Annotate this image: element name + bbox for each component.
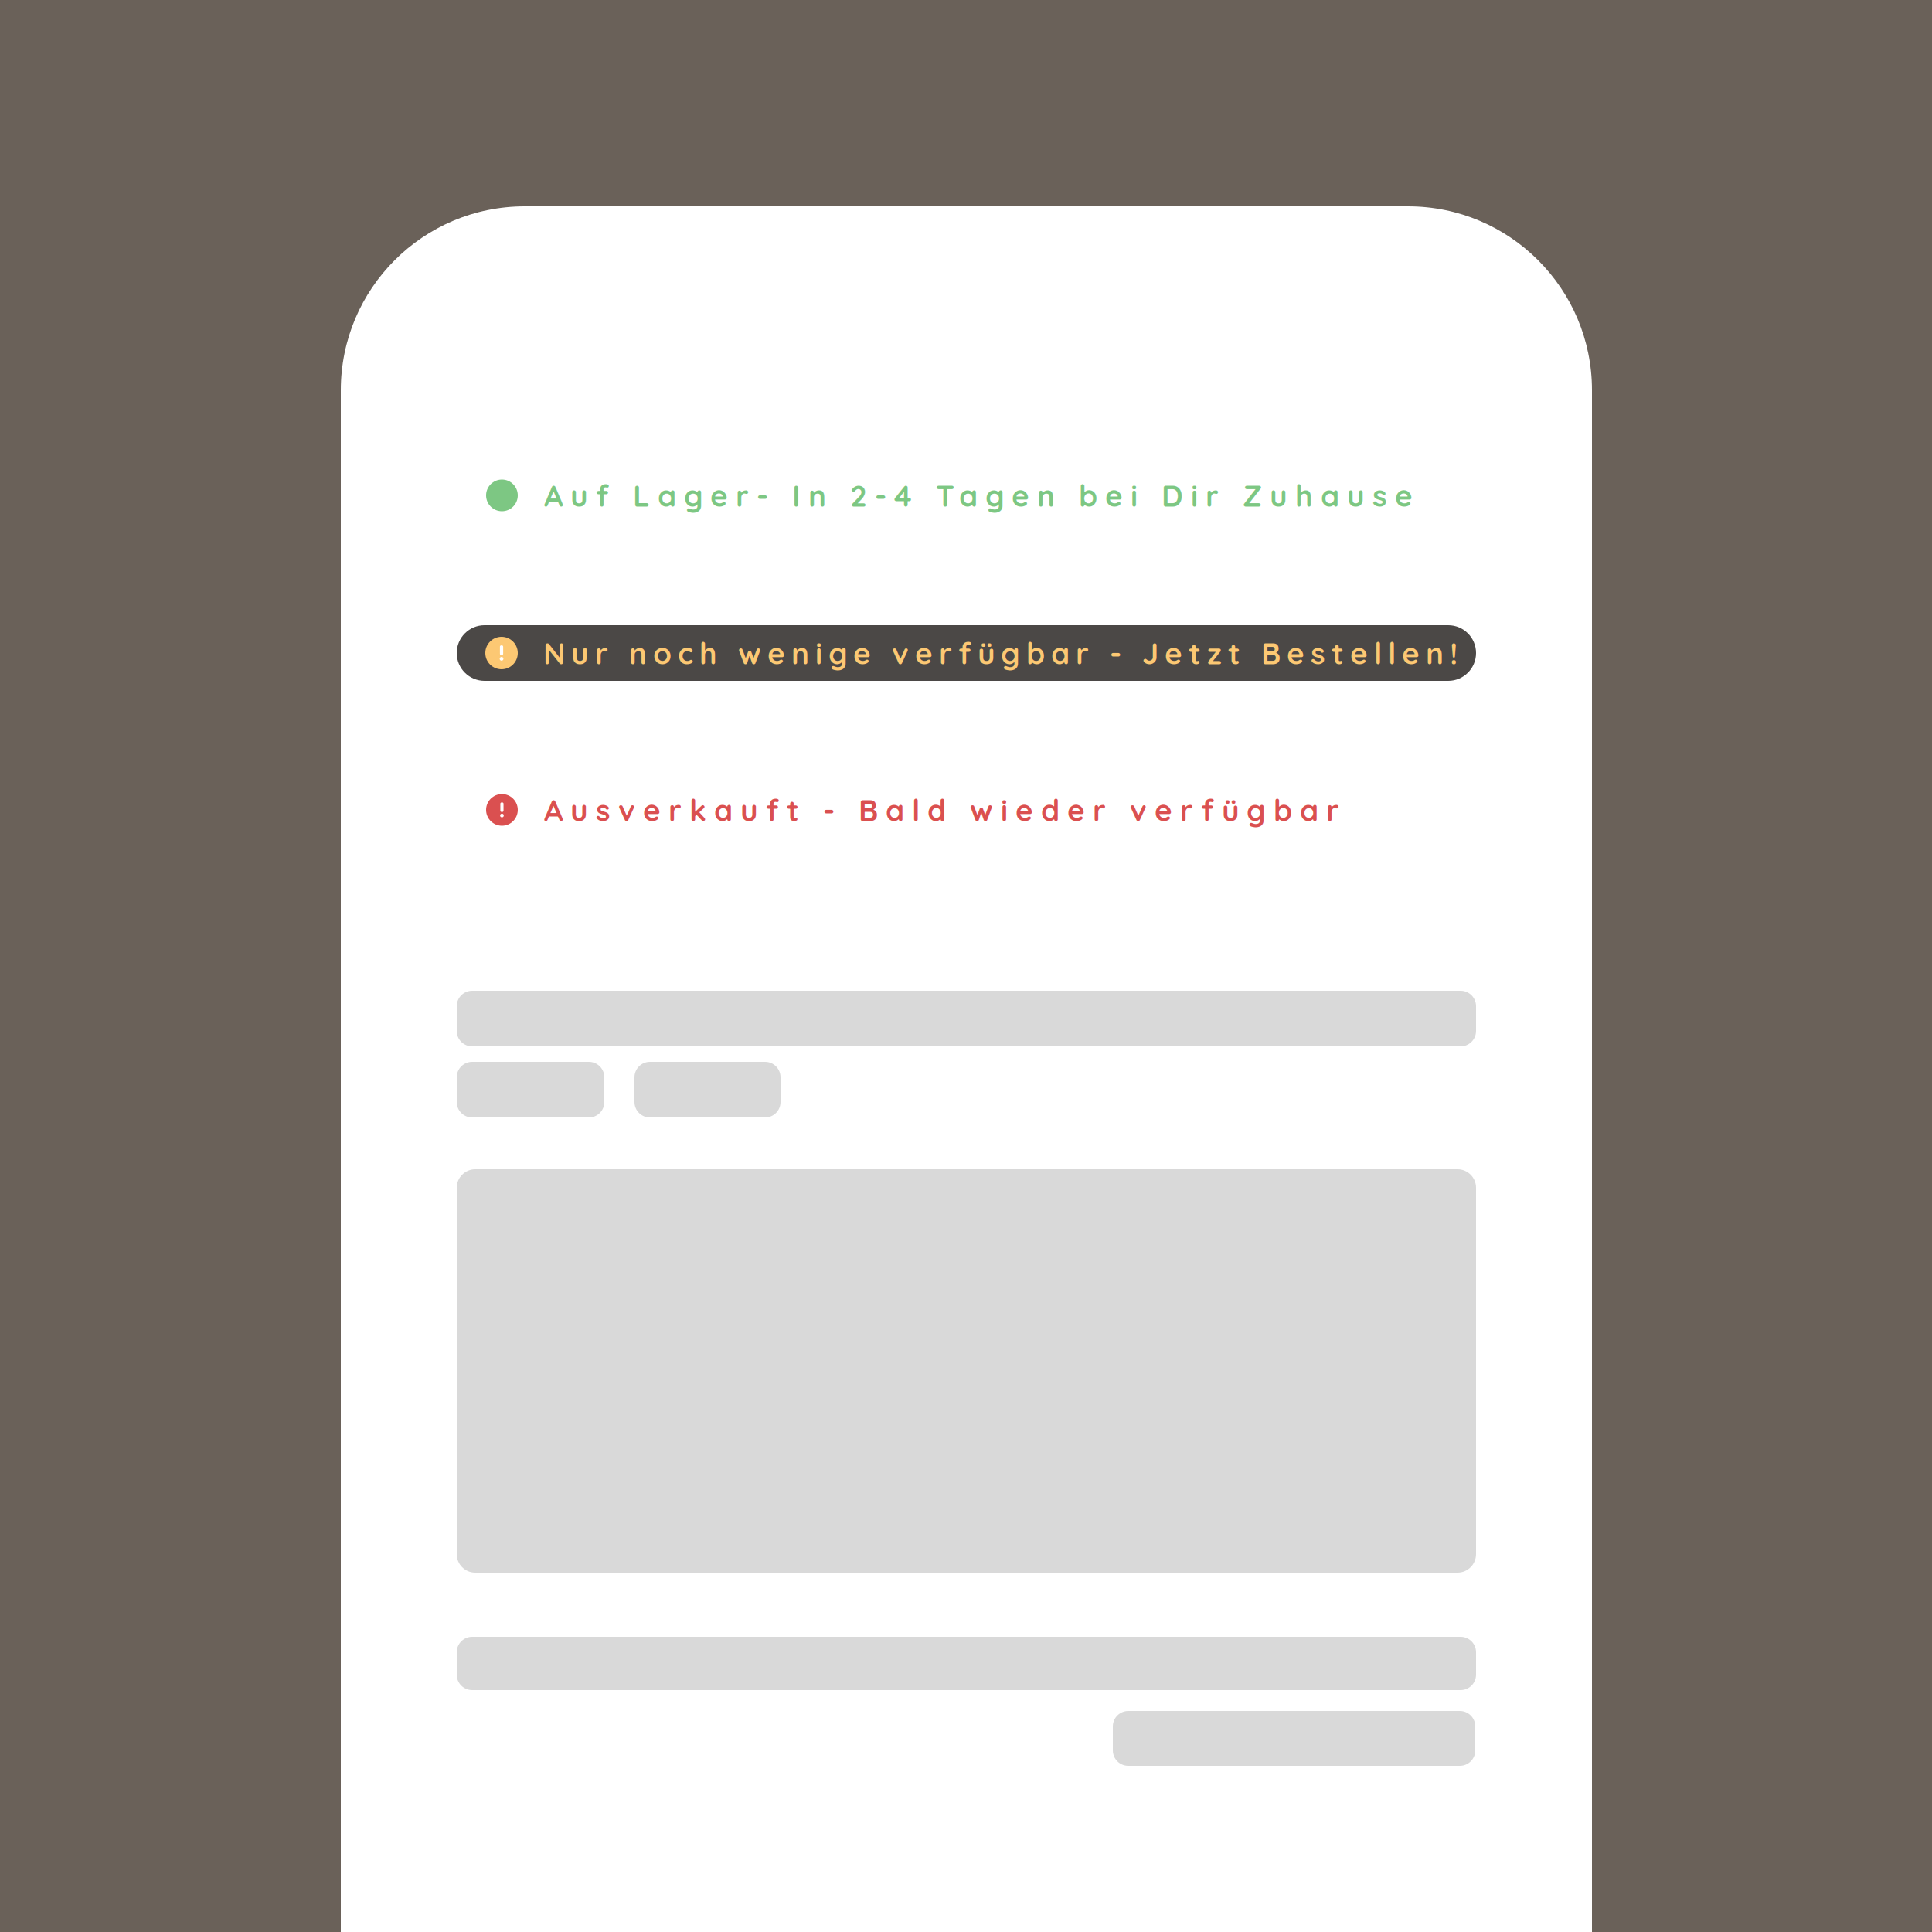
staticText: Nur noch wenige verfügbar - Jetzt Bestel…	[543, 634, 1458, 672]
button[interactable]: Nur noch wenige verfügbar - Jetzt Bestel…	[457, 625, 1476, 681]
staticText: Ausverkauft - Bald wieder verfügbar	[544, 791, 1339, 829]
staticText: Auf Lager- In 2-4 Tagen bei Dir Zuhause	[544, 477, 1413, 514]
button[interactable]: Ausverkauft - Bald wieder verfügbar	[457, 782, 1476, 838]
button[interactable]: Auf Lager- In 2-4 Tagen bei Dir Zuhause	[457, 468, 1476, 523]
